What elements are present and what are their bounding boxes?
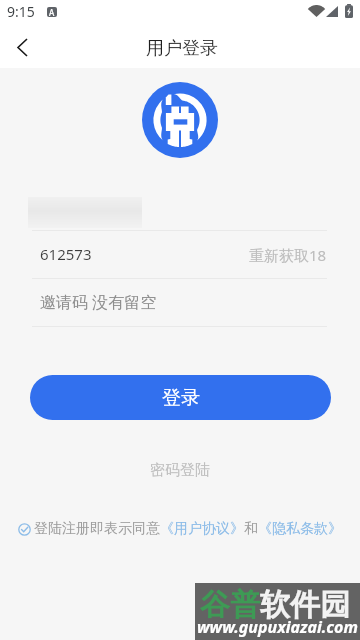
button[interactable]: 《隐私条款》 bbox=[258, 520, 342, 538]
staticText: 和 bbox=[244, 520, 258, 538]
staticText: www.gupuxiazai.com bbox=[197, 616, 358, 638]
button[interactable]: 重新获取18 bbox=[245, 231, 327, 278]
staticText: 9:15 bbox=[7, 2, 35, 21]
button[interactable]: 邀请码 没有留空 bbox=[32, 279, 327, 326]
staticText: 用户登录 bbox=[146, 37, 218, 60]
staticText: 重新获取18 bbox=[249, 245, 327, 265]
staticText: A bbox=[49, 7, 55, 17]
staticText: 登录 bbox=[162, 386, 200, 410]
staticText: 谷普 bbox=[200, 586, 260, 624]
staticText: 密码登陆 bbox=[150, 461, 210, 480]
button[interactable]: 612573 bbox=[32, 231, 327, 278]
staticText: 软件园 bbox=[260, 586, 350, 624]
staticText: 612573 bbox=[40, 244, 92, 264]
button[interactable]: 登录 bbox=[30, 375, 331, 420]
button[interactable]: 《用户协议》 bbox=[160, 520, 244, 538]
button[interactable]: Back bbox=[1, 26, 43, 68]
staticText: 登陆注册即表示同意 bbox=[34, 520, 160, 538]
button[interactable]: 密码登陆 bbox=[140, 456, 220, 485]
staticText: 邀请码 没有留空 bbox=[40, 291, 157, 313]
